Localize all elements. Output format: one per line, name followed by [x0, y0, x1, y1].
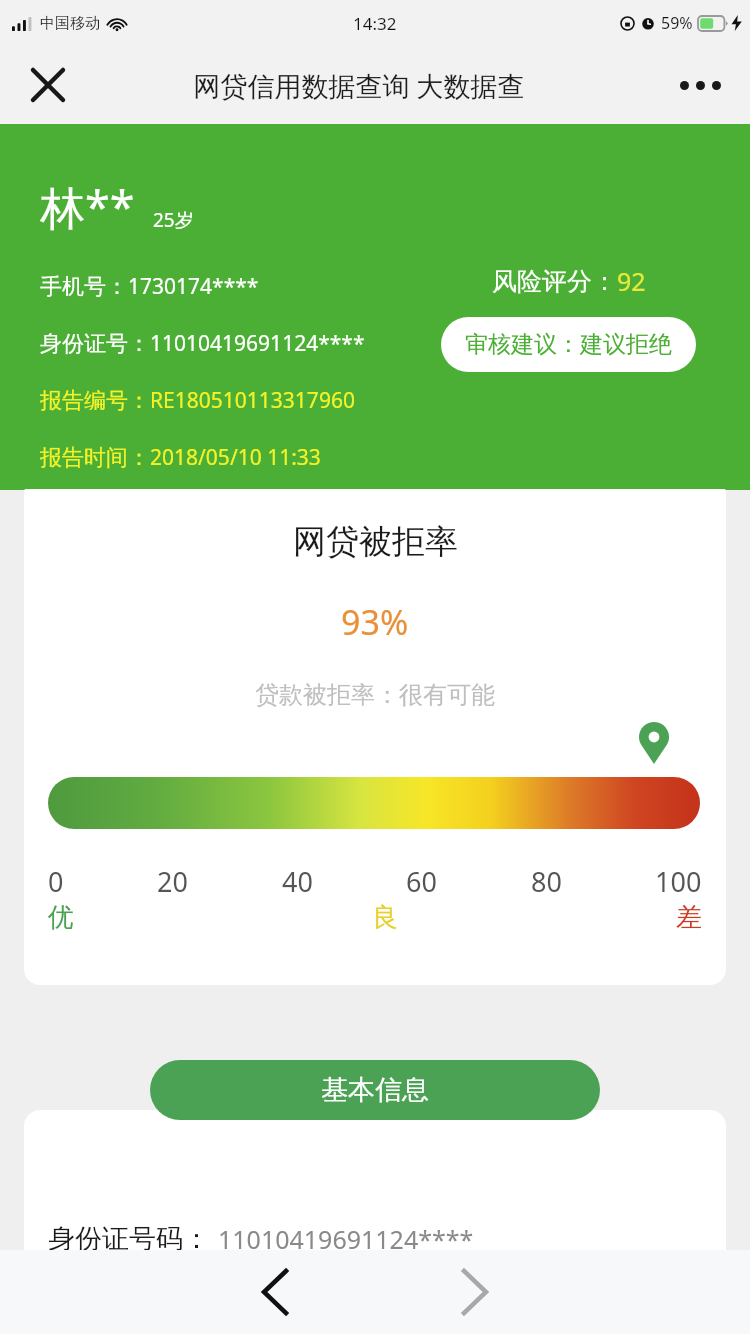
staticText: 优	[48, 901, 74, 934]
staticText: 手机号：	[40, 273, 128, 301]
staticText: 80	[531, 863, 562, 900]
staticText: RE180510113317960	[150, 386, 355, 415]
staticText: 60	[406, 863, 437, 900]
staticText: 2018/05/10 11:33	[150, 443, 321, 472]
staticText: 14:32	[353, 12, 397, 35]
staticText: 59%	[661, 12, 693, 34]
button[interactable]: 审核建议：建议拒绝	[441, 317, 696, 372]
staticText: 1730174****	[128, 272, 259, 301]
staticText: 网贷信用数据查询 大数据查	[134, 67, 584, 104]
staticText: 93%	[341, 599, 409, 645]
staticText: 贷款被拒率：很有可能	[255, 680, 495, 710]
button[interactable]: Close	[20, 57, 76, 113]
staticText: 11010419691124****	[218, 1222, 474, 1256]
button[interactable]: More options	[672, 61, 728, 109]
staticText: 差	[676, 901, 702, 934]
staticText: 风险评分：	[492, 266, 617, 297]
staticText: 11010419691124****	[150, 329, 365, 358]
staticText: 中国移动	[40, 14, 100, 33]
staticText: 良	[372, 901, 398, 934]
staticText: 报告编号：	[40, 387, 150, 415]
staticText: 40	[282, 863, 313, 900]
staticText: 0	[48, 863, 64, 900]
button[interactable]: 基本信息	[150, 1060, 600, 1120]
staticText: 25岁	[153, 207, 194, 233]
staticText: 审核建议：建议拒绝	[465, 330, 672, 359]
staticText: 身份证号：	[40, 330, 150, 358]
staticText: 报告时间：	[40, 444, 150, 472]
staticText: 身份证号码：	[48, 1222, 210, 1256]
button[interactable]: Back	[235, 1252, 315, 1332]
staticText: 100	[655, 863, 702, 900]
staticText: 92	[617, 264, 646, 298]
button[interactable]: Forward	[435, 1252, 515, 1332]
staticText: 网贷被拒率	[293, 521, 458, 563]
staticText: 林**	[40, 176, 135, 237]
staticText: 基本信息	[321, 1073, 429, 1107]
staticText: 20	[157, 863, 188, 900]
